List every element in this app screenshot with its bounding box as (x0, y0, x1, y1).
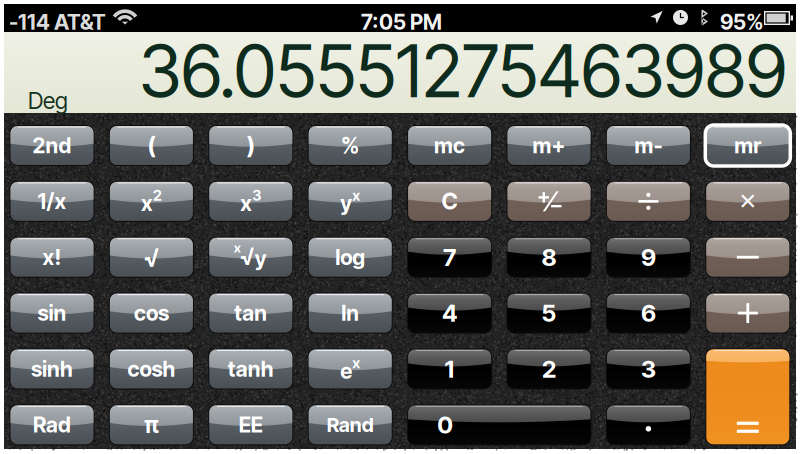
staticText: cos (134, 300, 169, 326)
staticText: 5 (541, 299, 556, 328)
button[interactable]: e (308, 348, 393, 389)
button[interactable]: m- (606, 125, 691, 166)
staticText: y (340, 190, 352, 216)
staticText: 4 (442, 299, 457, 328)
button[interactable]: C (407, 181, 492, 222)
staticText: Rad (33, 412, 71, 438)
staticText: sin (37, 300, 66, 326)
staticText: x (240, 190, 252, 216)
button[interactable]: π (109, 404, 194, 445)
staticText: % (341, 132, 360, 159)
staticText: 95% (720, 9, 764, 35)
staticText: y (255, 246, 267, 271)
staticText: x (234, 240, 241, 256)
button[interactable]: sinh (9, 348, 94, 389)
staticText: Deg (28, 87, 68, 114)
button[interactable] (705, 348, 790, 445)
staticText: x (352, 354, 360, 372)
button[interactable]: cosh (109, 348, 194, 389)
button[interactable]: x! (9, 237, 94, 278)
button[interactable]: mr (705, 125, 790, 166)
staticText: cosh (127, 356, 175, 382)
button[interactable] (705, 237, 790, 278)
button[interactable] (705, 293, 790, 334)
staticText: mr (734, 133, 761, 158)
staticText: log (335, 244, 365, 270)
button[interactable]: 3 (606, 348, 691, 389)
staticText: √ (143, 242, 159, 273)
button[interactable]: m+ (506, 125, 591, 166)
staticText: 8 (541, 243, 556, 272)
button[interactable]: ) (208, 125, 293, 166)
button[interactable]: x (208, 181, 293, 222)
button[interactable]: cos (109, 293, 194, 334)
button[interactable]: 7 (407, 237, 492, 278)
staticText: 2 (153, 186, 162, 204)
staticText: e (340, 358, 352, 384)
staticText: ln (341, 300, 359, 326)
staticText: 9 (641, 243, 656, 272)
button[interactable]: 2nd (9, 125, 94, 166)
staticText: 36.05551275463989 (139, 27, 787, 114)
button[interactable]: y (308, 181, 393, 222)
staticText: EE (239, 412, 263, 438)
staticText: 1/x (37, 188, 66, 214)
button[interactable]: 5 (506, 293, 591, 334)
button[interactable]: 6 (606, 293, 691, 334)
button[interactable]: 1 (407, 348, 492, 389)
button[interactable]: ln (308, 293, 393, 334)
button[interactable]: Rad (9, 404, 94, 445)
button[interactable]: 0 (407, 404, 591, 445)
staticText: sinh (31, 356, 73, 382)
button[interactable]: ( (109, 125, 194, 166)
staticText: -114 AT&T (9, 9, 106, 35)
staticText: 2nd (32, 133, 71, 158)
button[interactable]: tanh (208, 348, 293, 389)
button[interactable]: mc (407, 125, 492, 166)
staticText: mc (434, 133, 465, 158)
staticText: x (352, 186, 360, 204)
staticText: 3 (641, 354, 656, 383)
staticText: ( (147, 131, 155, 160)
staticText: tanh (228, 356, 274, 382)
button[interactable]: ✕ (705, 181, 790, 222)
staticText: ) (247, 131, 255, 160)
button[interactable] (606, 181, 691, 222)
staticText: Rand (327, 413, 374, 437)
button[interactable] (606, 404, 691, 445)
staticText: ✕ (738, 188, 757, 215)
button[interactable]: x (208, 237, 293, 278)
staticText: 6 (641, 299, 656, 328)
staticText: x (141, 190, 153, 216)
button[interactable]: 9 (606, 237, 691, 278)
button[interactable]: 8 (506, 237, 591, 278)
button[interactable]: 4 (407, 293, 492, 334)
staticText: 7 (443, 243, 456, 272)
staticText: 2 (542, 354, 556, 383)
button[interactable]: tan (208, 293, 293, 334)
staticText: √ (240, 242, 255, 271)
button[interactable]: % (308, 125, 393, 166)
button[interactable]: x (109, 181, 194, 222)
staticText: π (144, 411, 159, 438)
staticText: 3 (252, 186, 261, 204)
staticText: m+ (532, 133, 565, 158)
staticText: 7:05 PM (361, 9, 442, 35)
button[interactable]: √ (109, 237, 194, 278)
staticText: 1 (445, 354, 455, 383)
staticText: m- (634, 133, 662, 158)
button[interactable]: log (308, 237, 393, 278)
button[interactable]: 1/x (9, 181, 94, 222)
button[interactable] (506, 181, 591, 222)
button[interactable]: Rand (308, 404, 393, 445)
button[interactable]: sin (9, 293, 94, 334)
staticText: tan (234, 300, 267, 326)
staticText: x! (42, 244, 61, 270)
staticText: C (442, 188, 458, 215)
staticText: 0 (437, 410, 453, 439)
button[interactable]: 2 (506, 348, 591, 389)
button[interactable]: EE (208, 404, 293, 445)
